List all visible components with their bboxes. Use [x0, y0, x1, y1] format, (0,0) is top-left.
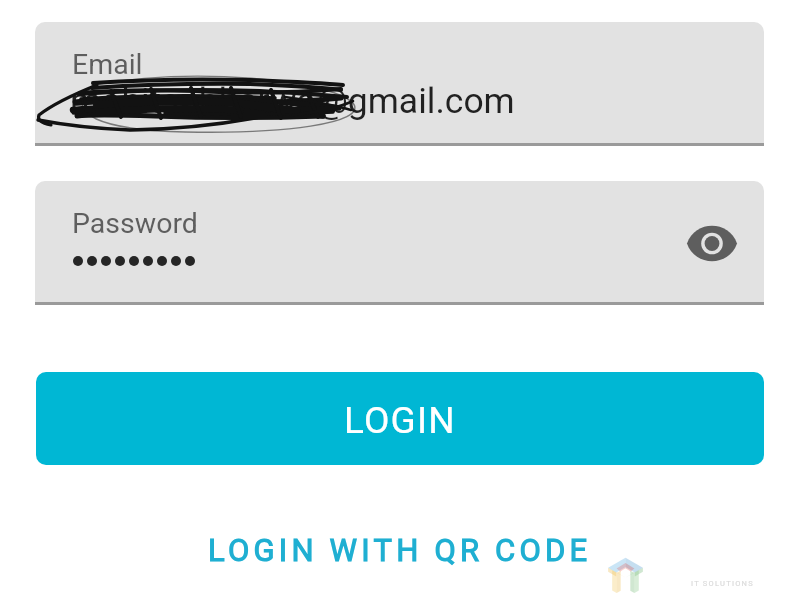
button[interactable]: Show password	[682, 213, 742, 273]
staticText: Password	[72, 207, 198, 240]
staticText: mohitsabharwa@gmail.com	[70, 80, 515, 122]
button[interactable]: LOGIN	[36, 372, 764, 465]
button[interactable]	[35, 22, 764, 146]
staticText: LOGIN WITH QR CODE	[208, 532, 592, 568]
staticText: IT SOLUTIONS	[691, 579, 754, 588]
button[interactable]: LOGIN WITH QR CODE	[0, 520, 800, 580]
staticText: LOGIN	[344, 399, 456, 442]
button[interactable]	[35, 181, 764, 305]
staticText: Email	[72, 48, 143, 81]
